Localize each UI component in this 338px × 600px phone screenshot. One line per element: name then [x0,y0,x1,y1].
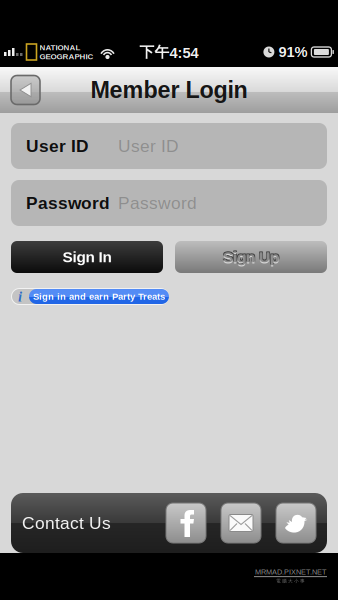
staticText: Sign Up [222,248,278,265]
staticText: i [18,288,22,305]
button[interactable]: i [11,288,169,305]
staticText: Sign Up [224,248,280,265]
staticText: User ID [26,136,89,156]
staticText: User ID [118,136,179,156]
staticText: MRMAD.PIXNET.NET [255,568,326,576]
staticText: Sign Up [223,248,279,265]
staticText: Member Login [90,77,247,103]
button[interactable]: Facebook [166,503,206,543]
staticText: Sign In [62,248,111,265]
staticText: Sign in and earn Party Treats [33,291,165,302]
button[interactable]: Back [11,75,40,104]
staticText: Password [26,193,110,213]
staticText: Sign Up [223,250,279,267]
staticText: 91% [278,44,307,60]
button[interactable]: Sign Up [175,241,327,273]
staticText: Password [118,193,197,213]
staticText: 下午4:54 [139,43,198,61]
button[interactable]: Twitter [276,503,316,543]
staticText: GEOGRAPHIC [39,52,93,61]
button[interactable]: Sign In [11,241,163,273]
staticText: 電 腦 大 小 事 [276,578,305,584]
staticText: Contact Us [22,513,111,533]
button[interactable]: Email [221,503,261,543]
staticText: NATIONAL [39,43,80,52]
